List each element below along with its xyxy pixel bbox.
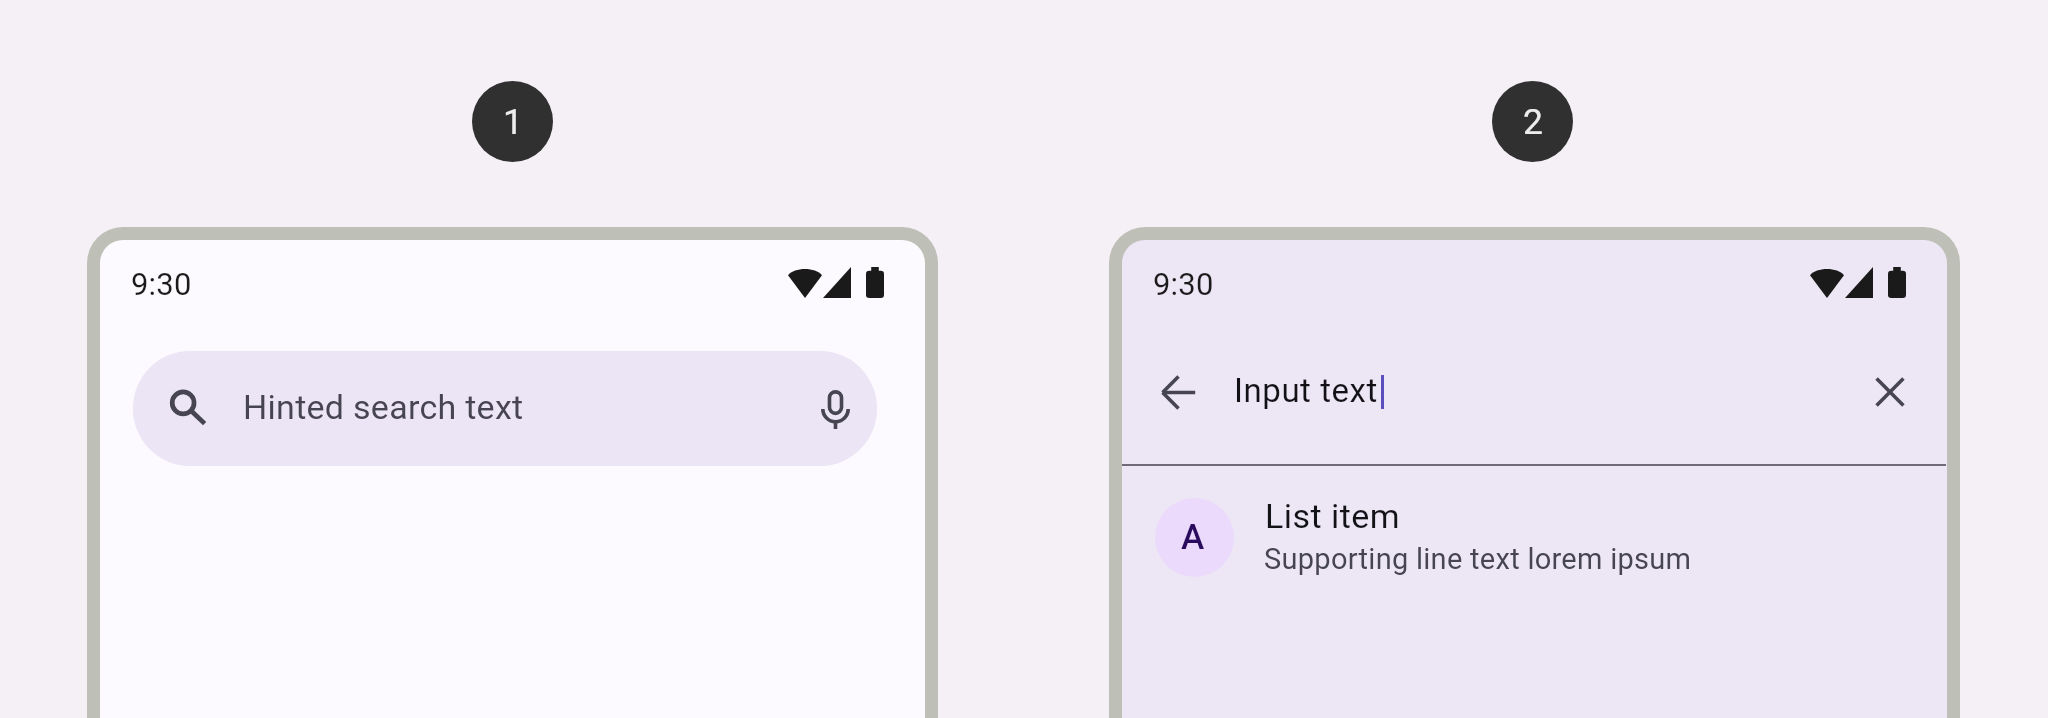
staticText: 9:30 xyxy=(131,266,192,302)
staticText: Input text xyxy=(1234,371,1378,410)
staticText: 1 xyxy=(503,101,523,143)
button[interactable]: A xyxy=(1122,466,1946,602)
button[interactable]: Back xyxy=(1154,368,1202,416)
button[interactable]: Step 2 xyxy=(1492,81,1573,162)
button[interactable]: Hinted search text xyxy=(133,351,877,466)
staticText: List item xyxy=(1265,496,1400,536)
staticText: 2 xyxy=(1523,101,1543,143)
staticText: A xyxy=(1181,517,1205,558)
button[interactable]: Clear text xyxy=(1866,368,1914,416)
button[interactable]: Voice search xyxy=(799,371,871,447)
button[interactable]: Step 1 xyxy=(472,81,553,162)
staticText: Hinted search text xyxy=(243,387,524,427)
staticText: 9:30 xyxy=(1153,266,1214,302)
staticText: Supporting line text lorem ipsum xyxy=(1264,542,1692,576)
